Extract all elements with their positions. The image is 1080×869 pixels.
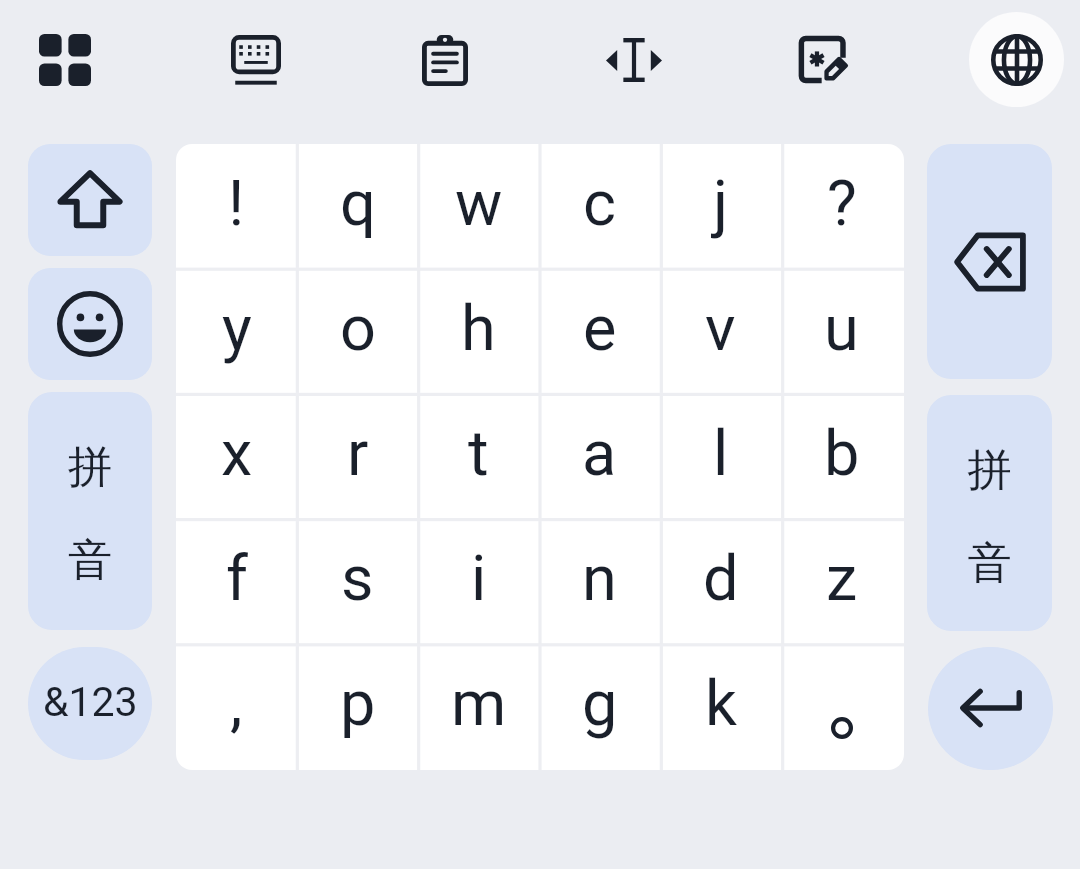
staticText: n bbox=[582, 542, 617, 616]
staticText: o bbox=[340, 292, 376, 366]
button[interactable]: v bbox=[660, 269, 781, 394]
button[interactable]: Apps bbox=[18, 13, 112, 107]
button[interactable]: Change language bbox=[969, 12, 1064, 107]
button[interactable]: ? bbox=[781, 144, 902, 269]
staticText: b bbox=[824, 417, 860, 491]
button[interactable]: i bbox=[418, 519, 539, 644]
button[interactable]: Emoji bbox=[28, 268, 152, 380]
staticText: , bbox=[230, 667, 243, 741]
staticText: t bbox=[468, 417, 489, 491]
button[interactable]: q bbox=[297, 144, 418, 269]
staticText: x bbox=[221, 417, 253, 491]
button[interactable]: , bbox=[176, 644, 297, 769]
button[interactable]: Shift bbox=[28, 144, 152, 256]
button[interactable]: r bbox=[297, 394, 418, 519]
button[interactable]: u bbox=[781, 269, 902, 394]
staticText: z bbox=[826, 542, 858, 616]
button[interactable]: Backspace bbox=[927, 144, 1052, 379]
button[interactable]: t bbox=[418, 394, 539, 519]
button[interactable]: b bbox=[781, 394, 902, 519]
staticText: v bbox=[705, 292, 736, 366]
button[interactable]: Clipboard bbox=[398, 13, 492, 107]
staticText: ! bbox=[228, 167, 245, 241]
button[interactable]: d bbox=[660, 519, 781, 644]
button[interactable]: Enter bbox=[928, 647, 1053, 770]
staticText: q bbox=[340, 167, 376, 241]
button[interactable]: p bbox=[297, 644, 418, 769]
staticText: h bbox=[461, 292, 496, 366]
button[interactable]: e bbox=[539, 269, 660, 394]
button[interactable]: z bbox=[781, 519, 902, 644]
staticText: m bbox=[451, 667, 507, 741]
staticText: i bbox=[471, 542, 487, 616]
button[interactable]: 拼音 bbox=[927, 395, 1052, 631]
button[interactable]: o bbox=[297, 269, 418, 394]
button[interactable]: n bbox=[539, 519, 660, 644]
staticText: g bbox=[582, 667, 618, 741]
staticText: s bbox=[341, 542, 374, 616]
button[interactable]: m bbox=[418, 644, 539, 769]
button[interactable]: Edit text bbox=[777, 13, 871, 107]
button[interactable]: y bbox=[176, 269, 297, 394]
button[interactable]: &123 bbox=[28, 647, 152, 760]
button[interactable]: l bbox=[660, 394, 781, 519]
button[interactable]: Full stop bbox=[781, 644, 902, 769]
button[interactable]: s bbox=[297, 519, 418, 644]
button[interactable]: w bbox=[418, 144, 539, 269]
button[interactable]: 拼音 bbox=[28, 392, 152, 630]
staticText: w bbox=[455, 167, 503, 241]
staticText: r bbox=[347, 417, 369, 491]
staticText: y bbox=[222, 292, 252, 366]
button[interactable]: h bbox=[418, 269, 539, 394]
button[interactable]: ! bbox=[176, 144, 297, 269]
staticText: c bbox=[583, 167, 616, 241]
staticText: l bbox=[713, 417, 729, 491]
staticText: d bbox=[703, 542, 739, 616]
staticText: 音 bbox=[28, 533, 152, 588]
staticText: 拼 bbox=[927, 443, 1052, 498]
staticText: p bbox=[340, 667, 376, 741]
staticText: a bbox=[582, 417, 617, 491]
button[interactable]: g bbox=[539, 644, 660, 769]
staticText: 拼 bbox=[28, 440, 152, 495]
staticText: f bbox=[226, 542, 248, 616]
staticText: 音 bbox=[927, 536, 1052, 591]
button[interactable]: Keyboard layout bbox=[209, 13, 303, 107]
button[interactable]: x bbox=[176, 394, 297, 519]
staticText: e bbox=[583, 292, 617, 366]
staticText: &123 bbox=[43, 678, 138, 726]
staticText: k bbox=[705, 667, 737, 741]
staticText: j bbox=[713, 167, 729, 241]
staticText: ? bbox=[827, 167, 857, 241]
button[interactable]: f bbox=[176, 519, 297, 644]
button[interactable]: k bbox=[660, 644, 781, 769]
button[interactable]: a bbox=[539, 394, 660, 519]
button[interactable]: c bbox=[539, 144, 660, 269]
button[interactable]: j bbox=[660, 144, 781, 269]
staticText: u bbox=[824, 292, 859, 366]
button[interactable]: Move cursor bbox=[587, 13, 681, 107]
